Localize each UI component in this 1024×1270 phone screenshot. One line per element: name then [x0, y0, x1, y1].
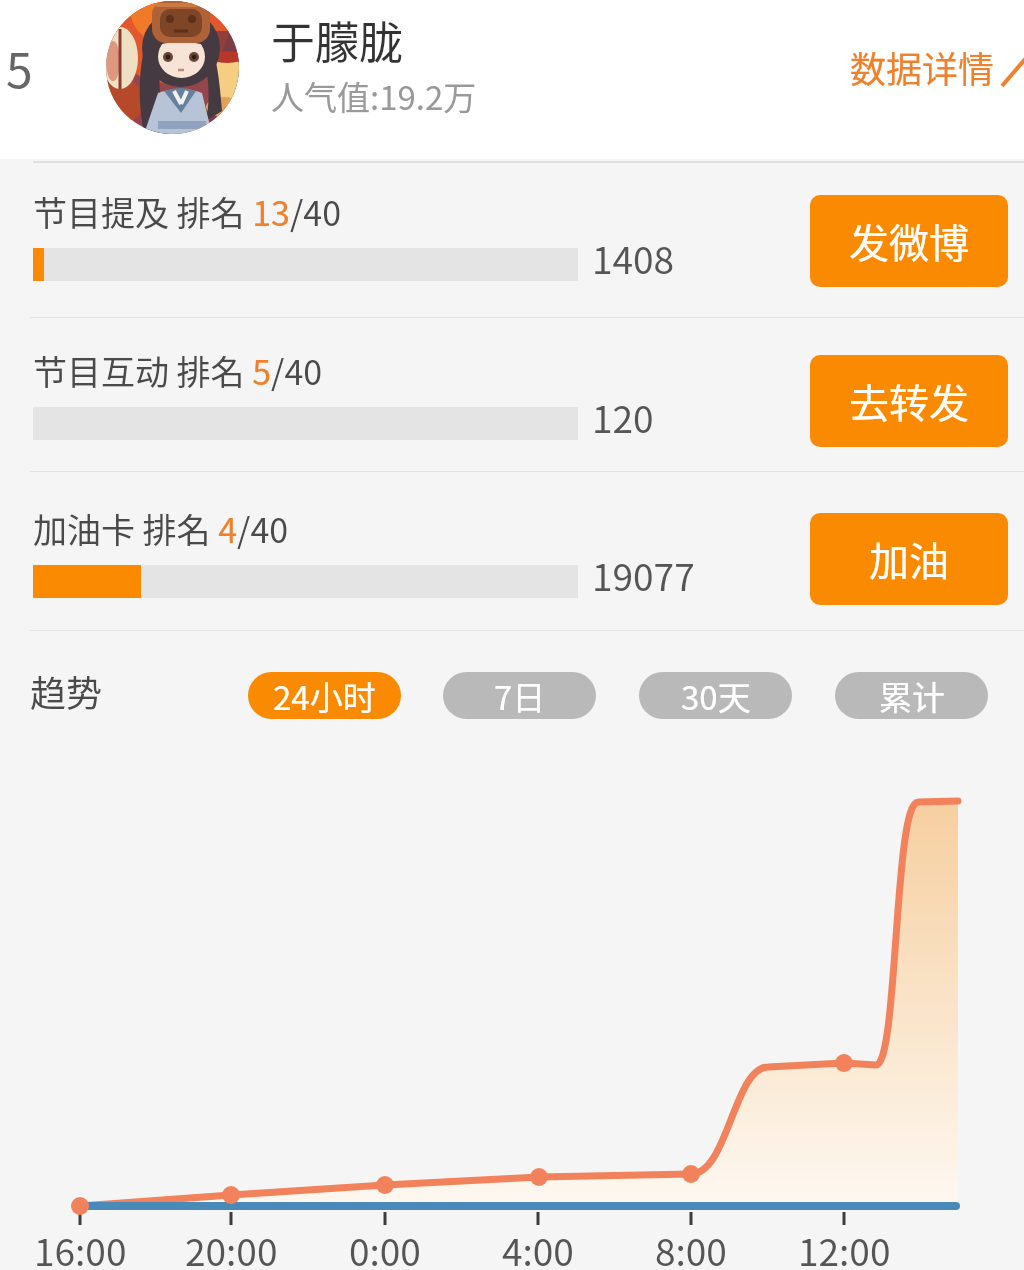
- staticText: 30天: [681, 672, 751, 719]
- button[interactable]: 7日: [443, 672, 596, 719]
- button[interactable]: 30天: [639, 672, 792, 719]
- button[interactable]: 24小时: [248, 672, 401, 719]
- staticText: 20:00: [185, 1223, 278, 1269]
- staticText: 加油卡 排名 4/40: [33, 504, 289, 553]
- staticText: 7日: [494, 672, 546, 719]
- staticText: 加油: [869, 530, 949, 588]
- button[interactable]: [106, 1, 239, 134]
- staticText: 去转发: [849, 372, 969, 430]
- button[interactable]: 发微博: [810, 195, 1008, 287]
- button[interactable]: 累计: [835, 672, 988, 719]
- staticText: 8:00: [655, 1223, 727, 1269]
- staticText: 4:00: [502, 1223, 574, 1269]
- button[interactable]: 加油: [810, 513, 1008, 605]
- staticText: 12:00: [798, 1223, 891, 1269]
- staticText: 节目互动 排名 5/40: [33, 346, 323, 395]
- staticText: 24小时: [273, 672, 376, 719]
- staticText: 累计: [879, 672, 945, 719]
- staticText: 120: [592, 390, 654, 442]
- staticText: 人气值:19.2万: [271, 72, 477, 120]
- staticText: 数据详情: [850, 41, 995, 93]
- staticText: 0:00: [349, 1223, 421, 1269]
- button[interactable]: 数据详情: [850, 40, 1024, 94]
- staticText: 节目提及 排名 13/40: [33, 187, 342, 236]
- staticText: 19077: [592, 548, 695, 600]
- staticText: 发微博: [849, 212, 969, 270]
- staticText: 趋势: [30, 665, 103, 717]
- staticText: 5: [6, 32, 33, 102]
- staticText: 16:00: [34, 1223, 127, 1269]
- staticText: 1408: [592, 231, 675, 283]
- staticText: 于朦胧: [271, 8, 403, 72]
- button[interactable]: 去转发: [810, 355, 1008, 447]
